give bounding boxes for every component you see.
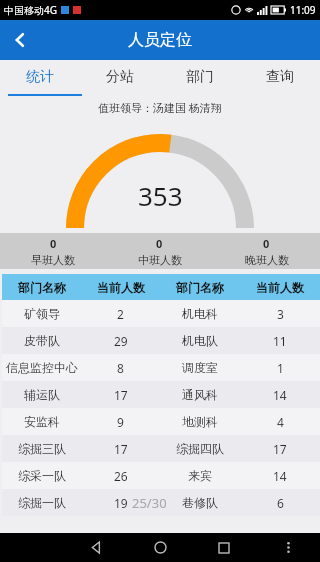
button[interactable]: Home — [128, 533, 192, 562]
staticText: 9 — [117, 414, 124, 430]
staticText: 14 — [273, 387, 287, 403]
staticText: 17 — [273, 441, 287, 457]
staticText: 19 — [114, 495, 128, 511]
staticText: 辅运队 — [24, 387, 60, 402]
button[interactable]: 皮带队 — [2, 327, 320, 354]
staticText: 皮带队 — [24, 333, 60, 348]
staticText: 人员定位 — [128, 30, 192, 50]
button[interactable]: 分站 — [80, 60, 160, 94]
staticText: 查询 — [266, 68, 294, 86]
staticText: 17 — [114, 441, 128, 457]
staticText: 当前人数 — [256, 280, 304, 295]
staticText: 部门 — [186, 68, 214, 86]
staticText: 2 — [117, 306, 124, 322]
staticText: 综采一队 — [18, 468, 66, 483]
staticText: 安监科 — [24, 414, 60, 429]
staticText: 分站 — [106, 68, 134, 86]
button[interactable]: Menu — [256, 533, 320, 562]
staticText: 0 — [156, 236, 163, 251]
button[interactable]: 矿领导 — [2, 300, 320, 327]
staticText: 8 — [117, 360, 124, 376]
button[interactable]: Recents — [192, 533, 256, 562]
staticText: 矿领导 — [24, 306, 60, 321]
staticText: 综掘一队 — [18, 495, 66, 510]
staticText: 部门名称 — [18, 280, 66, 295]
staticText: 25/30 — [132, 494, 167, 512]
staticText: 1 — [277, 360, 284, 376]
staticText: 17 — [114, 387, 128, 403]
staticText: 中班人数 — [138, 253, 182, 267]
button[interactable]: 安监科 — [2, 408, 320, 435]
button[interactable]: 综掘一队 — [2, 489, 320, 516]
button[interactable]: 辅运队 — [2, 381, 320, 408]
staticText: 11 — [273, 333, 287, 349]
staticText: 晚班人数 — [245, 253, 289, 267]
staticText: 机电队 — [182, 333, 218, 348]
staticText: 综掘四队 — [176, 441, 224, 456]
button[interactable]: 统计 — [0, 60, 80, 94]
staticText: 14 — [273, 468, 287, 484]
button[interactable]: 综掘三队 — [2, 435, 320, 462]
button[interactable]: 部门 — [160, 60, 240, 94]
staticText: 通风科 — [182, 387, 218, 402]
button[interactable]: 查询 — [240, 60, 320, 94]
staticText: 4 — [277, 414, 284, 430]
staticText: 调度室 — [182, 360, 218, 375]
button[interactable]: Back — [0, 20, 40, 60]
button[interactable]: Back — [64, 533, 128, 562]
staticText: 6 — [277, 495, 284, 511]
staticText: 来宾 — [188, 468, 212, 483]
staticText: 0 — [263, 236, 270, 251]
staticText: 巷修队 — [182, 495, 218, 510]
staticText: 3 — [277, 306, 284, 322]
staticText: 26 — [114, 468, 128, 484]
staticText: 29 — [114, 333, 128, 349]
staticText: 值班领导：汤建国 杨清翔 — [98, 100, 222, 115]
staticText: 当前人数 — [97, 280, 145, 295]
staticText: 11:09 — [290, 3, 316, 17]
staticText: 0 — [50, 236, 57, 251]
button[interactable]: 综采一队 — [2, 462, 320, 489]
staticText: 统计 — [26, 68, 54, 86]
staticText: 353 — [138, 178, 183, 213]
staticText: 地测科 — [182, 414, 218, 429]
staticText: 综掘三队 — [18, 441, 66, 456]
staticText: 机电科 — [182, 306, 218, 321]
button[interactable]: 信息监控中心 — [2, 354, 320, 381]
staticText: 部门名称 — [176, 280, 224, 295]
staticText: 信息监控中心 — [6, 360, 78, 375]
staticText: 早班人数 — [31, 253, 75, 267]
staticText: 中国移动4G — [4, 3, 57, 17]
